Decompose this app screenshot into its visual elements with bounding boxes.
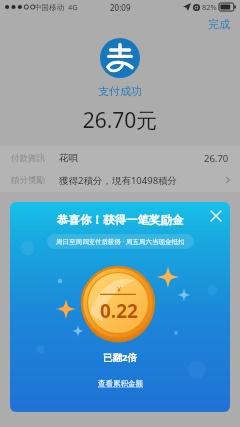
other: More (224, 176, 232, 184)
button[interactable]: 積分獎勵 (0, 169, 240, 191)
staticText: ¥ (117, 285, 122, 295)
staticText: 4G (68, 2, 78, 12)
staticText: 獲得2積分，現有10498積分 (59, 174, 178, 187)
button[interactable]: Close (206, 206, 226, 226)
staticText: 周日至周四支付后获得 · 周五周六当现金抵扣 (56, 237, 185, 246)
staticText: 查看累积金额 (98, 379, 143, 388)
staticText: 0.22 (100, 298, 138, 324)
staticText: 支付成功 (0, 84, 240, 98)
staticText: 20:09 (110, 2, 131, 13)
button[interactable]: 查看累积金额 (92, 377, 149, 390)
staticText: 花唄 (59, 152, 78, 164)
staticText: 26.70 (204, 152, 229, 165)
button[interactable]: 完成 (198, 15, 240, 33)
staticText: 已翻2倍 (103, 351, 137, 364)
staticText: 中国移动 (34, 3, 64, 12)
staticText: 26.70元 (0, 106, 240, 135)
staticText: 付款資訊 (11, 153, 45, 164)
staticText: 恭喜你！获得一笔奖励金 (57, 213, 184, 227)
staticText: 完成 (208, 17, 230, 31)
staticText: 82% (202, 2, 217, 12)
button[interactable]: 付款資訊 (0, 147, 240, 169)
staticText: 積分獎勵 (11, 175, 45, 186)
